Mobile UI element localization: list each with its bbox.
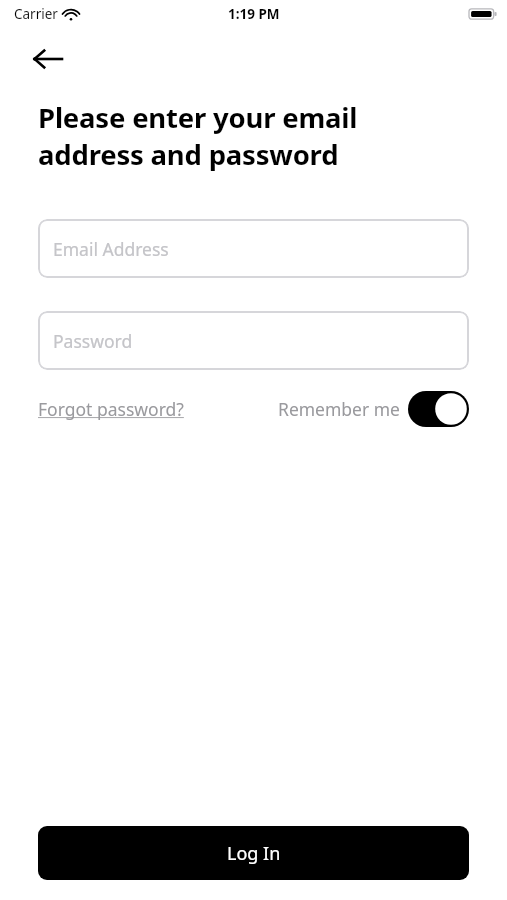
staticText: 1:19 PM [228,5,280,23]
staticText: address and password [38,136,339,173]
staticText: Log In [227,841,281,866]
staticText: Forgot password? [38,397,184,421]
button[interactable]: Remember me toggle, on [408,391,469,427]
staticText: Carrier [14,5,58,23]
button[interactable]: Remember me [278,391,469,427]
button[interactable]: Log In [38,826,469,880]
staticText: Password [53,329,133,353]
staticText: Remember me [278,397,400,421]
button[interactable]: Password [38,311,469,370]
staticText: Email Address [53,237,169,261]
button[interactable]: Email Address [38,219,469,278]
button[interactable]: Back [26,37,70,81]
staticText: Please enter your email [38,99,358,136]
button[interactable]: Forgot password? [38,393,184,425]
